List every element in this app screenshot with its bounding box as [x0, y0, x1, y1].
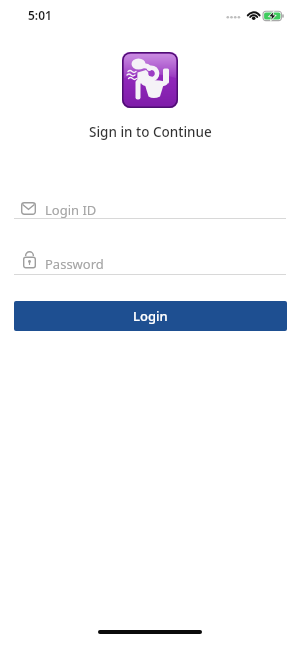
staticText: Sign in to Continue [89, 123, 212, 141]
button[interactable]: Login [14, 301, 287, 331]
button[interactable] [14, 196, 286, 220]
staticText: Login ID [45, 201, 97, 219]
staticText: Login [133, 307, 168, 325]
staticText: 5:01 [28, 7, 52, 23]
staticText: Password [45, 255, 104, 273]
button[interactable] [14, 249, 286, 275]
